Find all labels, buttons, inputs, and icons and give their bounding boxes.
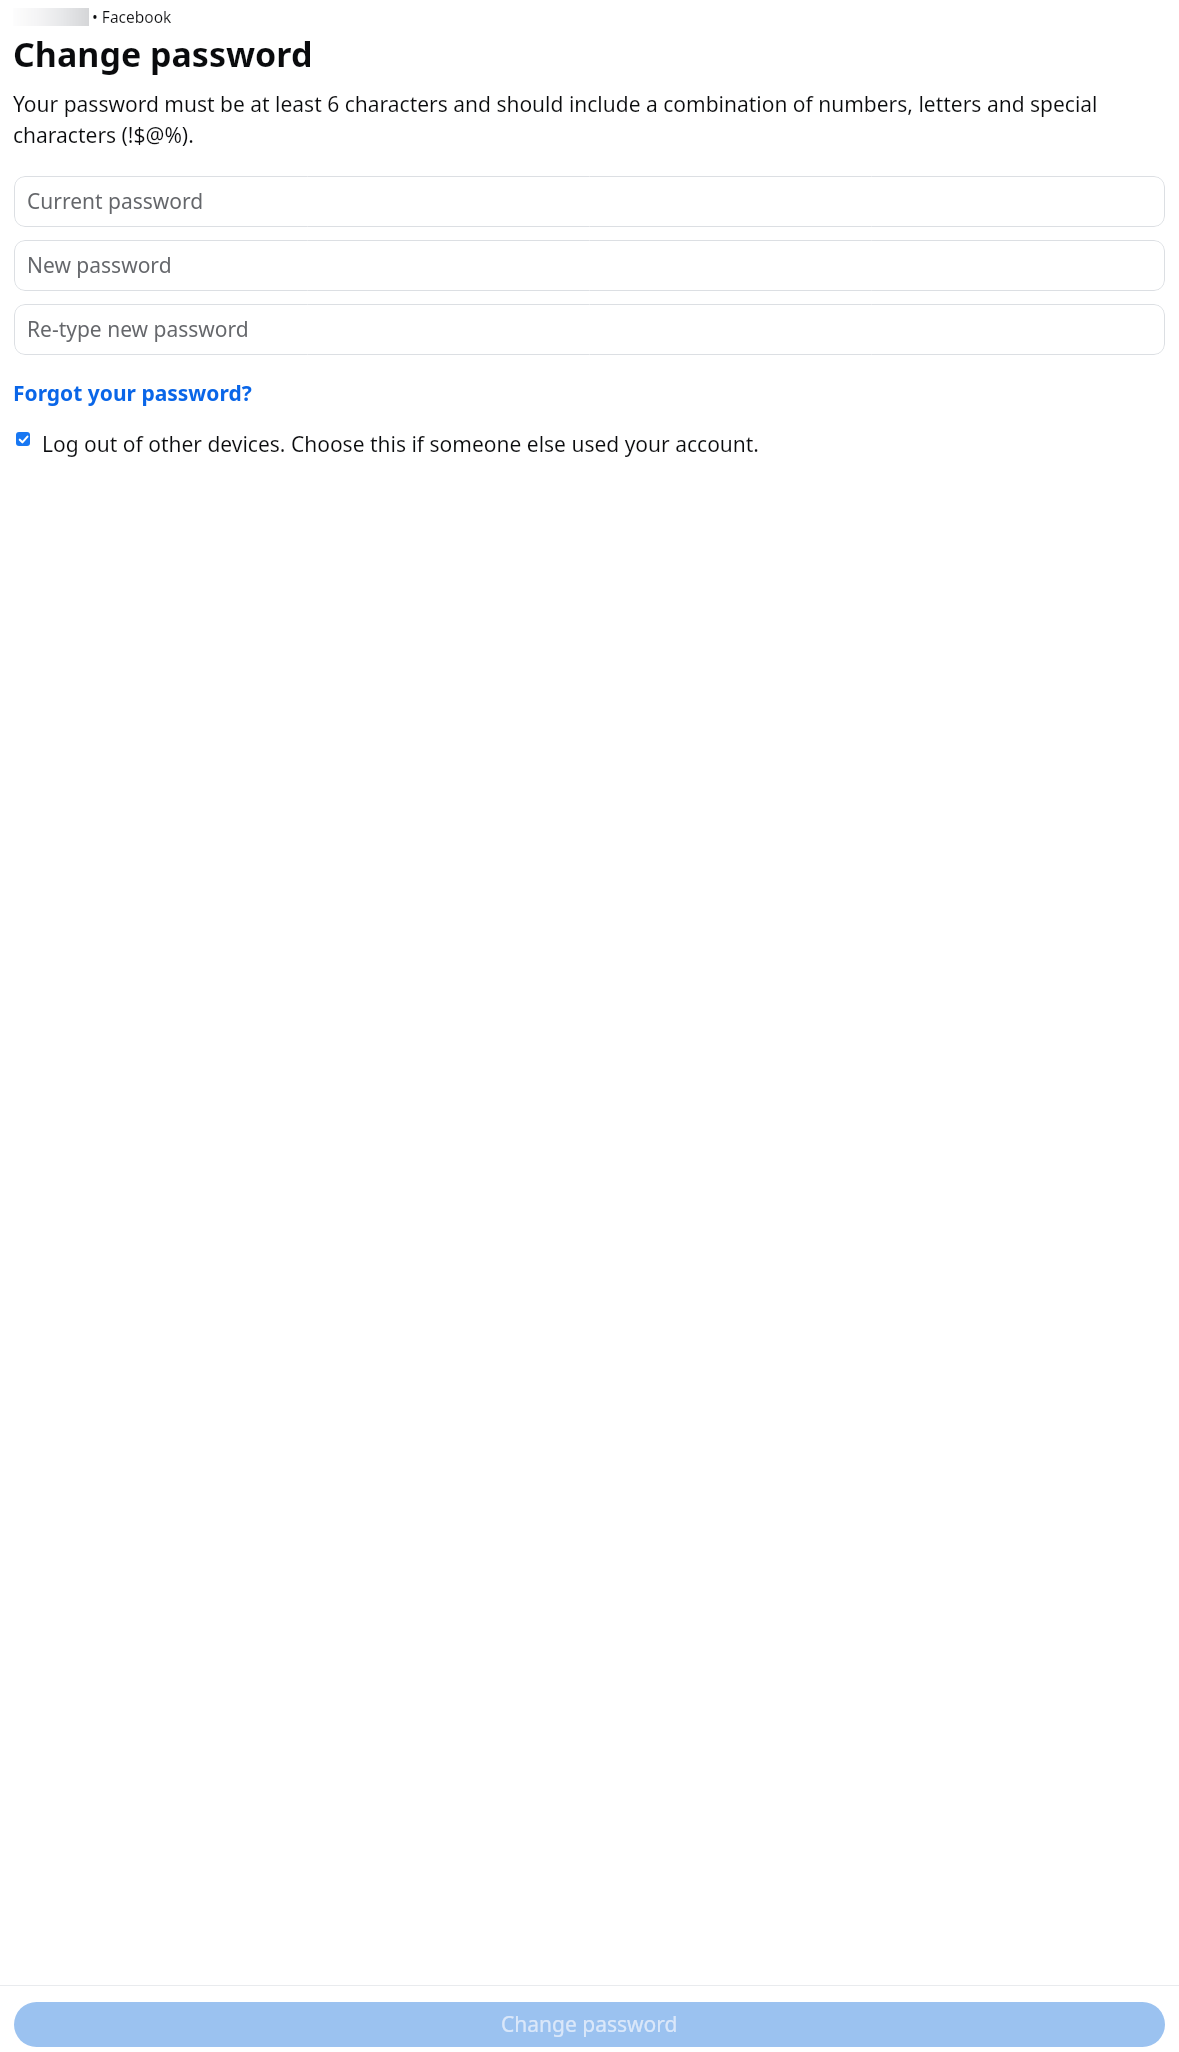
button[interactable]: Current password bbox=[14, 176, 1165, 227]
button[interactable]: Change password bbox=[14, 2002, 1165, 2047]
staticText: New password bbox=[27, 251, 172, 280]
staticText: Re-type new password bbox=[27, 315, 249, 344]
staticText: Log out of other devices. Choose this if… bbox=[42, 430, 759, 459]
button[interactable]: Re-type new password bbox=[14, 304, 1165, 355]
staticText: Change password bbox=[13, 31, 313, 77]
staticText: Current password bbox=[27, 187, 204, 216]
staticText: Forgot your password? bbox=[13, 379, 252, 408]
staticText: Change password bbox=[501, 2010, 678, 2039]
staticText: • Facebook bbox=[92, 6, 172, 27]
button[interactable]: New password bbox=[14, 240, 1165, 291]
button[interactable]: Log out of other devices bbox=[0, 427, 1179, 462]
staticText: Your password must be at least 6 charact… bbox=[13, 90, 1168, 149]
button[interactable]: Forgot your password? bbox=[13, 377, 252, 410]
other: Log out of other devices bbox=[16, 432, 30, 446]
